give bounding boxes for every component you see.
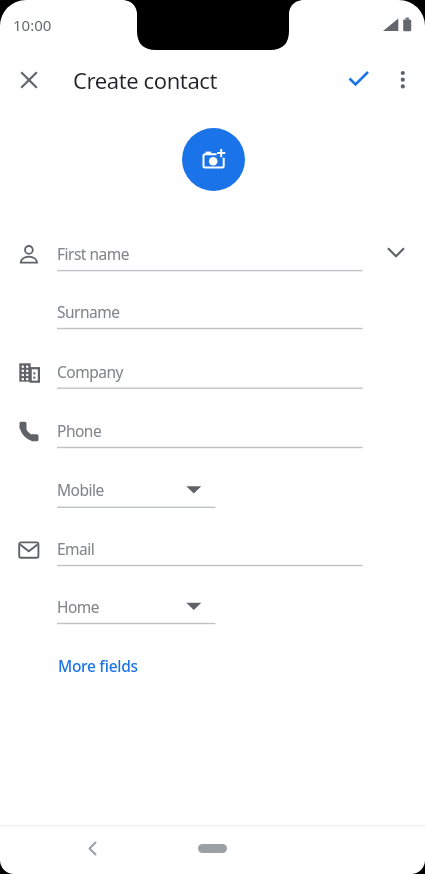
staticText: Company — [57, 361, 123, 382]
button[interactable]: More fields — [50, 649, 160, 681]
button[interactable]: Surname — [49, 287, 370, 335]
button[interactable] — [198, 844, 227, 853]
button[interactable]: Phone — [49, 406, 370, 454]
staticText: Mobile — [57, 479, 104, 500]
button[interactable]: Email — [49, 524, 370, 572]
button[interactable]: Home — [49, 582, 217, 630]
staticText: More fields — [58, 655, 138, 676]
button[interactable] — [5, 56, 53, 104]
button[interactable]: Mobile — [49, 465, 217, 513]
staticText: First name — [57, 243, 130, 264]
button[interactable] — [380, 236, 412, 268]
staticText: Surname — [57, 301, 120, 322]
button[interactable] — [379, 56, 425, 104]
button[interactable] — [182, 128, 245, 191]
staticText: 10:00 — [13, 15, 52, 35]
button[interactable] — [68, 824, 116, 872]
staticText: Phone — [57, 420, 102, 441]
button[interactable] — [334, 55, 382, 103]
staticText: Home — [57, 596, 100, 617]
button[interactable]: Company — [49, 347, 370, 395]
button[interactable]: First name — [49, 229, 370, 277]
staticText: Create contact — [73, 65, 218, 93]
staticText: Email — [57, 538, 95, 559]
